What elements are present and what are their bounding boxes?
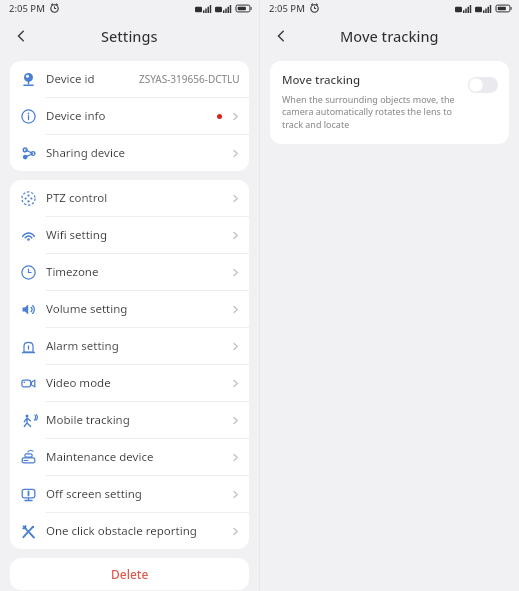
button[interactable]: Sharing device	[10, 135, 249, 171]
staticText: Mobile tracking	[46, 412, 130, 428]
staticText: Device id	[46, 71, 95, 87]
button[interactable]: Device id	[10, 61, 249, 97]
button[interactable]: Back	[6, 21, 36, 51]
button[interactable]: Volume setting	[10, 291, 249, 327]
staticText: Move tracking	[282, 72, 361, 88]
button[interactable]: Alarm setting	[10, 328, 249, 364]
button[interactable]: Delete	[10, 558, 249, 590]
staticText: Alarm setting	[46, 338, 119, 354]
staticText: Settings	[101, 26, 158, 46]
button[interactable]: Off screen setting	[10, 476, 249, 512]
button[interactable]: Video mode	[10, 365, 249, 401]
button[interactable]: Timezone	[10, 254, 249, 290]
staticText: Sharing device	[46, 145, 125, 161]
staticText: Delete	[111, 566, 149, 582]
staticText: 2:05 PM	[269, 2, 305, 15]
staticText: Off screen setting	[46, 486, 142, 502]
staticText: When the surrounding objects move, the c…	[282, 93, 456, 131]
button[interactable]: Maintenance device	[10, 439, 249, 475]
staticText: Timezone	[46, 264, 99, 280]
button[interactable]: Wifi setting	[10, 217, 249, 253]
staticText: Volume setting	[46, 301, 128, 317]
staticText: PTZ control	[46, 190, 108, 206]
button[interactable]: Device info	[10, 98, 249, 134]
button[interactable]: Mobile tracking	[10, 402, 249, 438]
staticText: Device info	[46, 108, 106, 124]
staticText: Wifi setting	[46, 227, 108, 243]
button[interactable]: One click obstacle reporting	[10, 513, 249, 549]
staticText: ZSYAS-319656-DCTLU	[139, 72, 240, 86]
staticText: Maintenance device	[46, 449, 154, 465]
staticText: Video mode	[46, 375, 111, 391]
button[interactable]: Move tracking toggle	[468, 77, 498, 93]
button[interactable]: Move tracking	[270, 61, 509, 144]
staticText: Move tracking	[340, 26, 439, 46]
button[interactable]: Back	[266, 21, 296, 51]
staticText: 2:05 PM	[9, 2, 45, 15]
staticText: One click obstacle reporting	[46, 523, 197, 539]
button[interactable]: PTZ control	[10, 180, 249, 216]
